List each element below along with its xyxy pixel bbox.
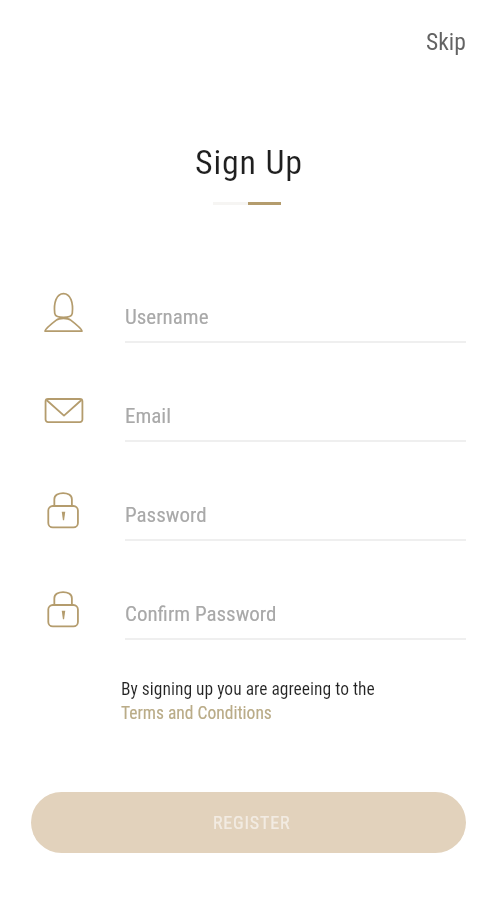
button[interactable]: Username field xyxy=(125,301,466,359)
staticText: Terms and Conditions xyxy=(121,703,272,724)
button[interactable]: Terms and Conditions xyxy=(121,703,272,724)
button[interactable]: REGISTER xyxy=(31,792,466,853)
staticText: Confirm Password xyxy=(125,602,277,627)
button[interactable]: Password field xyxy=(125,499,466,557)
staticText: REGISTER xyxy=(213,812,291,833)
staticText: Sign Up xyxy=(195,142,303,182)
staticText: Skip xyxy=(426,28,466,56)
staticText: Username xyxy=(125,305,209,330)
staticText: By signing up you are agreeing to the xyxy=(121,679,375,700)
button[interactable]: Confirm password field xyxy=(125,598,466,656)
staticText: Password xyxy=(125,503,207,528)
staticText: Email xyxy=(125,404,171,429)
button[interactable]: Skip xyxy=(418,24,474,60)
button[interactable]: Email field xyxy=(125,400,466,458)
